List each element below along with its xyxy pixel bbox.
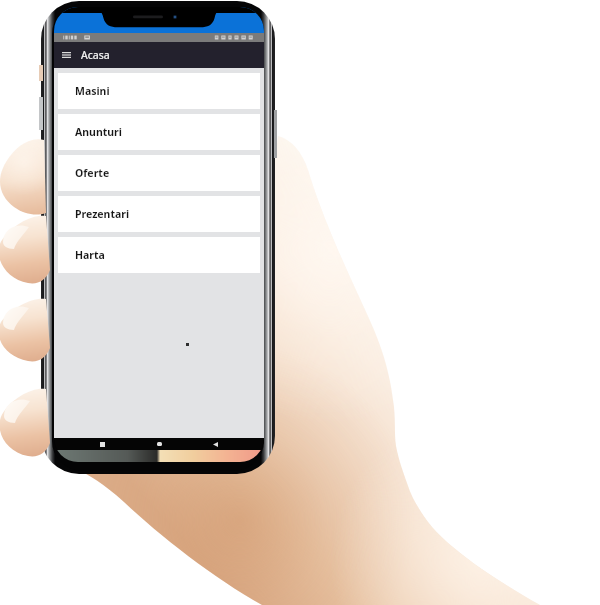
button[interactable]: Anunturi — [58, 114, 260, 150]
button[interactable]: Home — [153, 438, 165, 450]
staticText: Masini — [75, 84, 110, 98]
button[interactable]: Back — [209, 438, 221, 450]
staticText: Oferte — [75, 166, 110, 180]
button[interactable]: Harta — [58, 237, 260, 273]
button[interactable]: Oferte — [58, 155, 260, 191]
staticText: Prezentari — [75, 207, 130, 221]
staticText: Harta — [75, 248, 105, 262]
button[interactable]: Recent apps — [96, 438, 108, 450]
button[interactable]: Open navigation menu — [62, 46, 71, 64]
button[interactable]: Masini — [58, 73, 260, 109]
button[interactable]: Prezentari — [58, 196, 260, 232]
staticText: Anunturi — [75, 125, 122, 139]
staticText: Acasa — [81, 48, 110, 62]
